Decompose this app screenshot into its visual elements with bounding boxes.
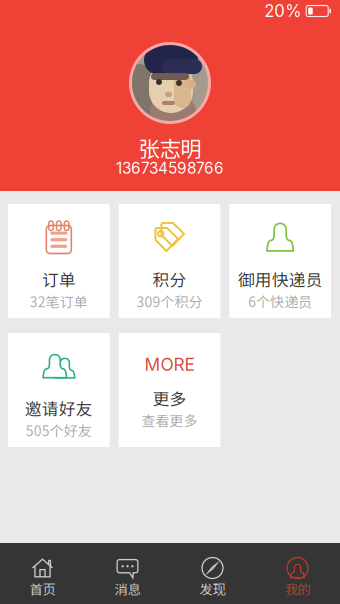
staticText: 20% [264,1,301,21]
button[interactable]: 御用快递员 [229,204,331,318]
button[interactable]: 邀请好友 [8,333,110,447]
staticText: 我的 [284,579,310,598]
button[interactable]: 发现 [170,543,255,604]
button[interactable]: 积分 [119,204,220,318]
staticText: 订单 [42,267,76,291]
staticText: 邀请好友 [25,396,93,420]
button[interactable]: 订单 [8,204,110,318]
staticText: 发现 [199,579,225,598]
staticText: 6个快递员 [248,291,312,311]
staticText: 首页 [29,579,55,598]
staticText: 136734598766 [116,159,224,177]
staticText: 张志明 [138,132,201,163]
button[interactable]: MORE [119,333,220,447]
staticText: 更多 [152,386,186,410]
staticText: 御用快递员 [238,267,323,291]
staticText: 32笔订单 [30,291,88,311]
button[interactable]: 我的 [255,543,340,604]
staticText: MORE [144,354,194,375]
staticText: 309个积分 [136,291,202,311]
button[interactable]: 消息 [85,543,170,604]
button[interactable]: 首页 [0,543,85,604]
staticText: 消息 [114,579,140,598]
staticText: 查看更多 [141,410,197,430]
staticText: 积分 [152,267,186,291]
staticText: 505个好友 [26,420,92,440]
